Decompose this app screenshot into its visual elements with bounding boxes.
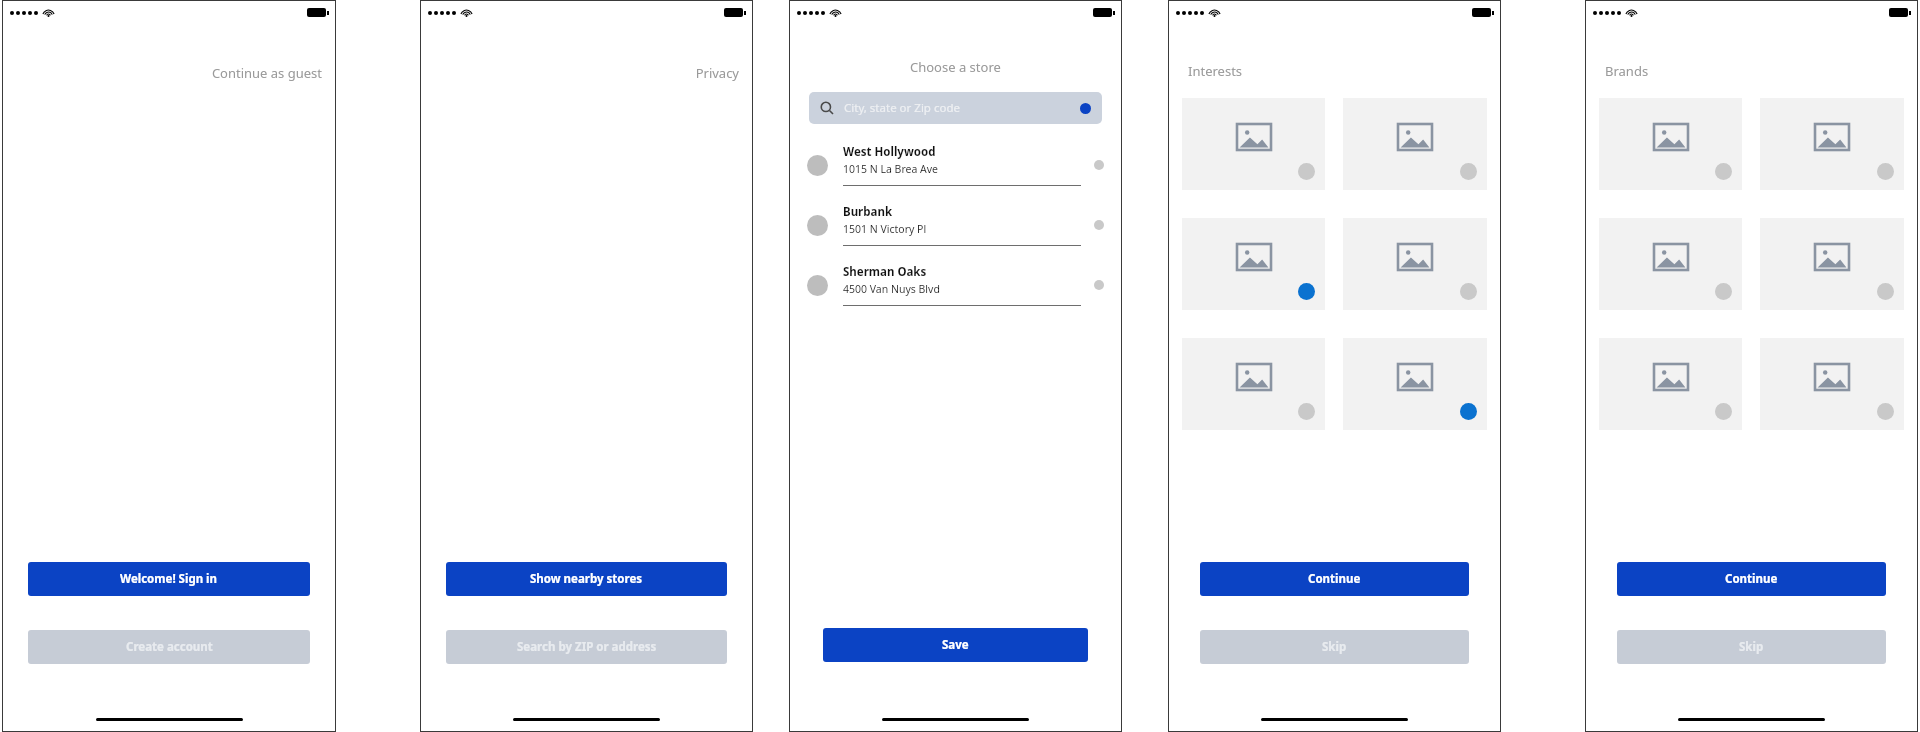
- button[interactable]: Sherman Oaks: [789, 260, 1122, 306]
- staticText: Search by ZIP or address: [517, 639, 657, 655]
- staticText: West Hollywood: [843, 144, 936, 160]
- button[interactable]: Item: [1760, 98, 1904, 190]
- button[interactable]: Burbank: [789, 200, 1122, 246]
- staticText: Create account: [126, 639, 213, 655]
- button[interactable]: Skip: [1617, 630, 1886, 664]
- button[interactable]: City, state or Zip code: [809, 92, 1102, 124]
- button[interactable]: West Hollywood: [789, 140, 1122, 186]
- button[interactable]: Item: [1599, 338, 1742, 430]
- button[interactable]: Item: [1182, 338, 1325, 430]
- button[interactable]: Item: [1760, 338, 1904, 430]
- staticText: Brands: [1605, 62, 1649, 80]
- button[interactable]: Continue: [1200, 562, 1469, 596]
- button[interactable]: Item: [1343, 218, 1487, 310]
- staticText: Choose a store: [910, 58, 1001, 76]
- staticText: 1015 N La Brea Ave: [843, 162, 939, 176]
- button[interactable]: Item: [1182, 98, 1325, 190]
- button[interactable]: Continue: [1617, 562, 1886, 596]
- staticText: Continue: [1725, 571, 1778, 587]
- staticText: Continue: [1308, 571, 1361, 587]
- staticText: Privacy: [434, 64, 739, 82]
- button[interactable]: Show nearby stores: [446, 562, 727, 596]
- button[interactable]: Item: [1599, 98, 1742, 190]
- staticText: Burbank: [843, 204, 893, 220]
- staticText: Save: [942, 637, 969, 653]
- button[interactable]: Item: [1760, 218, 1904, 310]
- button[interactable]: Item: [1343, 98, 1487, 190]
- staticText: Sherman Oaks: [843, 264, 927, 280]
- staticText: Show nearby stores: [530, 571, 643, 587]
- staticText: Interests: [1188, 62, 1243, 80]
- button[interactable]: Welcome! Sign in: [28, 562, 310, 596]
- button[interactable]: Item: [1599, 218, 1742, 310]
- button[interactable]: Search by ZIP or address: [446, 630, 727, 664]
- button[interactable]: Skip: [1200, 630, 1469, 664]
- staticText: City, state or Zip code: [844, 100, 1080, 116]
- staticText: 4500 Van Nuys Blvd: [843, 282, 940, 296]
- button[interactable]: Selected item: [1182, 218, 1325, 310]
- staticText: Continue as guest: [16, 64, 322, 82]
- staticText: Skip: [1739, 639, 1764, 655]
- staticText: Skip: [1322, 639, 1347, 655]
- staticText: Welcome! Sign in: [120, 571, 218, 587]
- staticText: 1501 N Victory Pl: [843, 222, 927, 236]
- button[interactable]: Selected item: [1343, 338, 1487, 430]
- button[interactable]: Create account: [28, 630, 310, 664]
- button[interactable]: Save: [823, 628, 1088, 662]
